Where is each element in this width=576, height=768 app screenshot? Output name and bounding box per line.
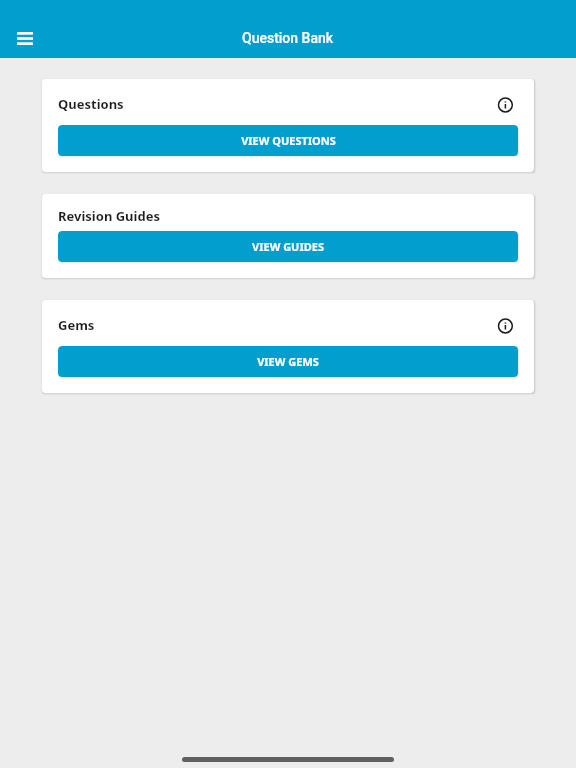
button[interactable]: VIEW GEMS bbox=[58, 346, 518, 377]
staticText: Question Bank bbox=[242, 30, 334, 46]
button[interactable]: Info bbox=[494, 92, 518, 116]
staticText: VIEW GEMS bbox=[257, 354, 319, 369]
button[interactable]: VIEW GUIDES bbox=[58, 231, 518, 262]
staticText: Revision Guides bbox=[58, 207, 518, 225]
staticText: VIEW GUIDES bbox=[252, 239, 324, 254]
button[interactable]: Open navigation menu bbox=[8, 21, 42, 55]
button[interactable]: VIEW QUESTIONS bbox=[58, 125, 518, 156]
staticText: Gems bbox=[58, 316, 494, 334]
staticText: Questions bbox=[58, 95, 494, 113]
staticText: VIEW QUESTIONS bbox=[241, 133, 336, 148]
button[interactable]: Info bbox=[494, 313, 518, 337]
